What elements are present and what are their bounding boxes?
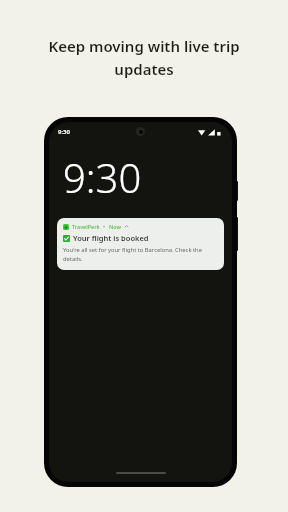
button[interactable]: Collapse notification — [124, 224, 129, 229]
staticText: Your flight is booked — [73, 233, 149, 243]
staticText: 9:30 — [63, 150, 142, 204]
staticText: Now — [109, 223, 121, 230]
staticText: Keep moving with live trip updates — [48, 36, 240, 79]
staticText: You're all set for your flight to Barcel… — [63, 246, 202, 263]
staticText: • — [103, 223, 106, 230]
staticText: 9:30 — [58, 128, 70, 136]
staticText: TravelPerk — [72, 223, 100, 230]
button[interactable]: TravelPerk — [57, 218, 224, 270]
